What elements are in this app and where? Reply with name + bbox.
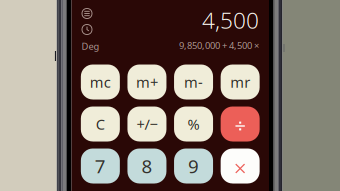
staticText: m- (184, 72, 203, 92)
button[interactable]: mr (221, 64, 260, 99)
button[interactable]: History (81, 24, 92, 35)
button[interactable]: 7 (81, 148, 120, 183)
button[interactable]: Menu (81, 8, 92, 19)
staticText: Deg (81, 40, 99, 52)
button[interactable]: Multiply (221, 148, 260, 183)
button[interactable]: +/− (127, 106, 166, 141)
staticText: 8 (141, 154, 152, 178)
button[interactable]: 9 (174, 148, 213, 183)
staticText: 9 (188, 154, 199, 178)
staticText: 9,850,000 + 4,500 × (179, 39, 259, 51)
staticText: mc (90, 72, 111, 92)
button[interactable]: m+ (127, 64, 166, 99)
staticText: 7 (95, 154, 106, 178)
button[interactable]: mc (81, 64, 120, 99)
staticText: C (96, 114, 105, 134)
staticText: mr (230, 72, 250, 92)
button[interactable]: m- (174, 64, 213, 99)
staticText: 4,500 (202, 5, 259, 35)
button[interactable]: % (174, 106, 213, 141)
button[interactable]: C (81, 106, 120, 141)
staticText: m+ (136, 72, 158, 92)
button[interactable]: 8 (127, 148, 166, 183)
staticText: +/− (136, 114, 157, 134)
staticText: % (188, 114, 200, 134)
button[interactable]: Divide (221, 106, 260, 141)
